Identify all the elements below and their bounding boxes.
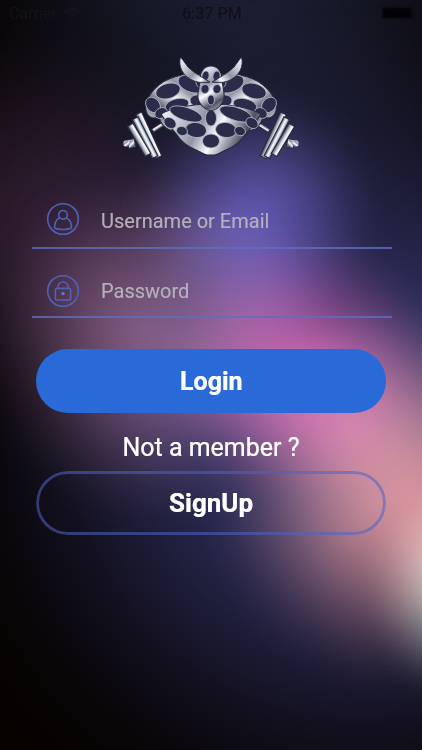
button[interactable]: Login [36,349,386,413]
staticText: Password [101,279,190,302]
staticText: 6:37 PM [182,4,242,23]
other: Gym logo [0,0,422,750]
staticText: Login [180,367,243,396]
staticText: Username or Email [101,209,270,232]
staticText: SignUp [169,488,254,518]
button[interactable]: SignUp [36,471,386,535]
staticText: Not a member ? [0,433,422,462]
staticText: Carrier [9,4,57,23]
